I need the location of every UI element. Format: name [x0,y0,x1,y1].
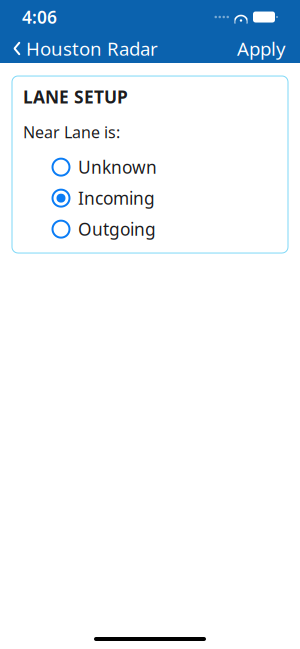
button[interactable]: Houston Radar [4,30,158,67]
staticText: LANE SETUP [23,85,128,108]
staticText: Unknown [78,156,157,179]
button[interactable]: Incoming [52,183,277,214]
button[interactable]: Outgoing [52,214,277,245]
button[interactable]: Apply [227,30,296,67]
staticText: Apply [237,36,286,61]
staticText: Near Lane is: [23,121,120,143]
staticText: Outgoing [78,218,156,241]
staticText: Houston Radar [26,36,158,61]
staticText: Incoming [78,187,155,210]
staticText: 4:06 [22,5,57,28]
button[interactable]: Unknown [52,152,277,183]
